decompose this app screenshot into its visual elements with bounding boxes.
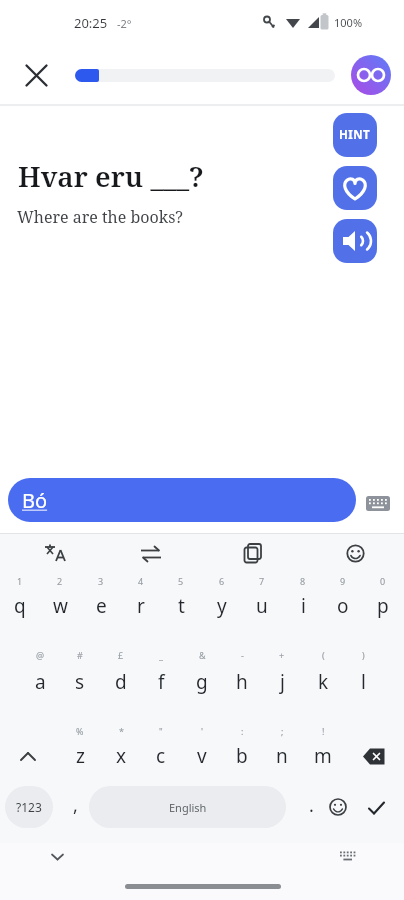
staticText: 100% [334,15,363,30]
button[interactable] [6,735,50,777]
button[interactable] [352,735,398,777]
staticText: m [314,743,332,769]
button[interactable] [333,219,377,263]
staticText: 7 [259,575,265,587]
staticText: ! [322,725,325,737]
staticText: i [301,593,306,619]
button[interactable] [358,786,394,828]
staticText: e [96,593,107,619]
staticText: -2° [117,16,132,31]
button[interactable] [351,55,391,95]
staticText: % [76,725,84,737]
staticText: : [241,725,244,737]
staticText: q [14,593,26,619]
staticText: k [318,669,329,695]
button[interactable]: ?123 [5,786,53,828]
staticText: ?123 [16,799,42,815]
staticText: 5 [178,575,184,587]
button[interactable] [322,786,354,828]
staticText: ' [201,725,204,737]
staticText: l [361,669,366,695]
button[interactable]: English [89,786,286,828]
staticText: English [169,800,207,815]
staticText: s [75,669,85,695]
staticText: £ [118,649,124,661]
staticText: w [53,593,68,619]
staticText: z [76,743,85,769]
staticText: Hvar eru ___? [18,157,204,195]
staticText: , [73,793,78,818]
staticText: 6 [219,575,225,587]
staticText: " [159,725,163,737]
staticText: o [337,593,349,619]
button[interactable] [18,57,54,93]
staticText: 2 [57,575,63,587]
staticText: t [178,593,185,619]
staticText: ) [362,649,365,661]
staticText: 3 [98,575,104,587]
staticText: 8 [300,575,306,587]
staticText: # [77,649,83,661]
staticText: a [35,669,46,695]
staticText: 0 [380,575,386,587]
staticText: ; [281,725,284,737]
staticText: 1 [17,575,23,587]
button[interactable] [333,166,377,210]
staticText: h [236,669,248,695]
staticText: 9 [340,575,346,587]
staticText: c [156,743,166,769]
staticText: @ [36,649,45,661]
staticText: 20:25 [74,14,108,32]
staticText: j [280,669,285,695]
staticText: . [309,793,314,818]
staticText: f [158,669,165,695]
staticText: _ [159,649,163,661]
staticText: v [197,743,207,769]
staticText: Bó [22,487,48,514]
button[interactable]: Bó [8,478,356,522]
button[interactable]: HINT [333,113,377,157]
staticText: r [137,593,145,619]
staticText: d [115,669,127,695]
staticText: 4 [138,575,144,587]
staticText: + [279,649,285,661]
staticText: Where are the books? [17,206,183,228]
staticText: u [256,593,268,619]
staticText: x [116,743,127,769]
staticText: & [199,649,206,661]
staticText: * [119,725,124,737]
staticText: n [276,743,288,769]
staticText: HINT [339,127,371,143]
staticText: p [377,593,389,619]
staticText: - [241,649,244,661]
staticText: y [217,593,227,619]
staticText: ( [322,649,325,661]
staticText: g [196,669,208,695]
staticText: b [236,743,248,769]
